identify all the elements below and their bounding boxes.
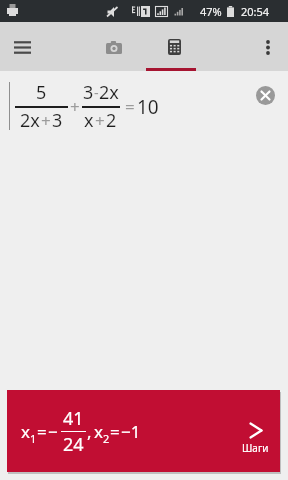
button[interactable]: Calculator	[150, 23, 198, 71]
staticText: −	[48, 420, 58, 443]
staticText: 20:54	[241, 4, 270, 19]
staticText: 3	[52, 108, 63, 133]
staticText: −1	[121, 420, 141, 443]
staticText: 5	[36, 80, 47, 105]
staticText: =	[125, 95, 135, 118]
staticText: 2	[103, 431, 110, 446]
staticText: +	[70, 95, 80, 118]
staticText: =	[110, 420, 120, 443]
staticText: 2x	[99, 80, 119, 105]
staticText: x	[94, 420, 103, 443]
button[interactable]: x	[7, 390, 280, 472]
staticText: +	[95, 109, 105, 132]
staticText: 24	[63, 432, 84, 457]
staticText: Шаги	[242, 441, 269, 455]
staticText: x	[84, 108, 94, 133]
staticText: -	[94, 83, 99, 103]
button[interactable]: Camera	[90, 23, 138, 71]
staticText: 47%	[200, 4, 222, 19]
staticText: 3	[83, 80, 94, 105]
staticText: x	[21, 420, 30, 443]
button[interactable]: Menu	[2, 27, 42, 67]
staticText: 41	[63, 406, 84, 431]
staticText: ,	[87, 420, 92, 443]
staticText: 2	[106, 108, 117, 133]
staticText: =	[37, 420, 47, 443]
staticText: 10	[137, 94, 159, 120]
staticText: 2x	[20, 108, 40, 133]
button[interactable]: Clear equation	[256, 86, 275, 105]
button[interactable]: More options	[248, 27, 288, 67]
staticText: 1	[30, 431, 37, 446]
staticText: +	[41, 109, 51, 132]
